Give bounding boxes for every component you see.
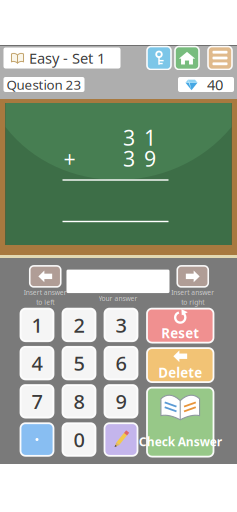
staticText: Easy - Set 1 bbox=[29, 48, 105, 68]
button[interactable]: 0 bbox=[62, 423, 95, 456]
staticText: 0 bbox=[73, 426, 84, 453]
staticText: 1 bbox=[144, 123, 156, 152]
button[interactable]: Easy - Set 1 bbox=[3, 47, 120, 68]
staticText: 9 bbox=[144, 144, 156, 173]
button[interactable]: 5 bbox=[62, 347, 95, 379]
staticText: 1 bbox=[31, 312, 42, 338]
button[interactable]: 6 bbox=[104, 347, 137, 379]
staticText: 5 bbox=[73, 350, 84, 376]
button[interactable]: Decimal point bbox=[20, 423, 53, 456]
staticText: to right bbox=[181, 298, 204, 307]
staticText: to left bbox=[36, 298, 54, 307]
staticText: Insert answer bbox=[171, 288, 214, 297]
button[interactable]: 1 bbox=[20, 309, 53, 341]
staticText: 9 bbox=[115, 388, 126, 415]
staticText: Your answer bbox=[98, 294, 137, 303]
staticText: Reset bbox=[161, 324, 199, 342]
button[interactable]: Reset bbox=[147, 309, 213, 343]
button[interactable]: Insert answer to left bbox=[29, 266, 61, 307]
staticText: Check Answer bbox=[139, 434, 222, 450]
staticText: 3 bbox=[123, 123, 135, 152]
button[interactable]: Hint bbox=[147, 46, 171, 69]
button[interactable]: 9 bbox=[104, 385, 137, 418]
button[interactable]: Insert answer to right bbox=[176, 266, 209, 307]
button[interactable]: 2 bbox=[62, 309, 95, 341]
staticText: 40 bbox=[207, 75, 223, 94]
staticText: Delete bbox=[158, 364, 202, 381]
staticText: 7 bbox=[31, 388, 42, 415]
staticText: 4 bbox=[31, 350, 42, 376]
staticText: 3 bbox=[123, 144, 135, 173]
staticText: 6 bbox=[115, 350, 126, 376]
button[interactable]: 8 bbox=[62, 385, 95, 418]
button[interactable]: Home bbox=[175, 46, 199, 69]
staticText: 2 bbox=[73, 312, 84, 338]
staticText: Insert answer bbox=[24, 288, 67, 297]
button[interactable]: Check Answer bbox=[147, 388, 213, 457]
button[interactable]: 3 bbox=[104, 309, 137, 341]
button[interactable]: Delete bbox=[147, 348, 213, 382]
staticText: Question 23 bbox=[6, 76, 81, 93]
button[interactable]: Menu bbox=[208, 46, 232, 69]
button[interactable]: 7 bbox=[20, 385, 53, 418]
button[interactable]: Draw bbox=[104, 423, 137, 456]
staticText: 3 bbox=[115, 312, 126, 338]
staticText: + bbox=[63, 144, 75, 173]
button[interactable]: 4 bbox=[20, 347, 53, 379]
staticText: 8 bbox=[73, 388, 84, 415]
